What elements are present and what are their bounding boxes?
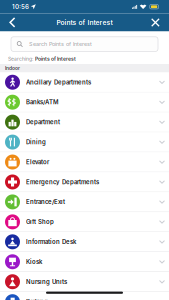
staticText: Kiosk xyxy=(26,258,42,265)
staticText: Points of Interest xyxy=(56,18,112,27)
staticText: Ancillary Departments xyxy=(26,79,91,86)
staticText: Parking xyxy=(26,298,48,300)
button[interactable]: Kiosk xyxy=(0,252,169,272)
staticText: Elevator xyxy=(26,158,49,166)
staticText: Search Points of Interest xyxy=(29,41,92,47)
staticText: Information Desk xyxy=(26,238,76,245)
staticText: Department xyxy=(26,118,60,126)
staticText: Searching: xyxy=(8,56,33,62)
button[interactable]: Close xyxy=(145,14,166,31)
button[interactable]: Parking xyxy=(0,292,169,300)
staticText: Nursing Units xyxy=(26,278,67,285)
button[interactable]: Nursing Units xyxy=(0,272,169,292)
button[interactable]: Ancillary Departments xyxy=(0,72,169,92)
button[interactable]: Emergency Departments xyxy=(0,172,169,192)
staticText: Banks/ATM xyxy=(26,98,59,106)
button[interactable]: Search Points of Interest xyxy=(11,37,158,51)
button[interactable]: Information Desk xyxy=(0,232,169,252)
button[interactable]: Department xyxy=(0,112,169,132)
button[interactable]: Back xyxy=(3,14,22,31)
staticText: Points of Interest xyxy=(35,56,76,62)
staticText: 10:56 xyxy=(12,3,29,10)
button[interactable]: Elevator xyxy=(0,152,169,172)
staticText: Gift Shop xyxy=(26,218,54,225)
button[interactable]: Gift Shop xyxy=(0,212,169,232)
staticText: Indoor xyxy=(5,65,20,71)
button[interactable]: Dining xyxy=(0,132,169,152)
button[interactable]: Banks/ATM xyxy=(0,92,169,112)
staticText: Entrance/Exit xyxy=(26,198,65,206)
button[interactable]: Entrance/Exit xyxy=(0,192,169,212)
staticText: Emergency Departments xyxy=(26,178,99,186)
staticText: Dining xyxy=(26,138,46,146)
